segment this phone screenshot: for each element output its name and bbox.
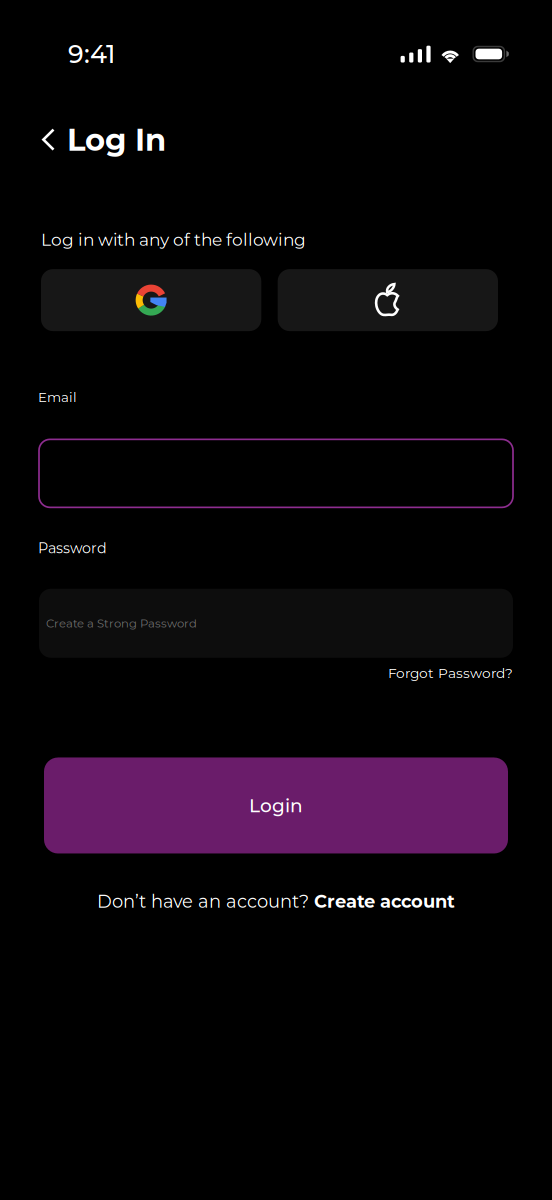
staticText: Log in with any of the following [41,229,306,250]
staticText: Email [38,389,77,405]
button[interactable]: Login [44,757,508,853]
button[interactable]: Forgot Password? [388,665,513,681]
staticText: Login [249,794,303,817]
staticText: 9:41 [68,39,115,69]
staticText: Create account [314,890,455,912]
staticText: Forgot Password? [388,665,513,681]
staticText: Password [38,539,107,557]
button[interactable]: Don’t have an account? [97,890,455,912]
button[interactable]: Continue with Apple [278,269,498,331]
staticText: Create a Strong Password [46,616,197,630]
button[interactable]: Continue with Google [41,269,261,331]
button[interactable]: Back [42,121,166,158]
staticText: Don’t have an account? [97,890,314,912]
staticText: Log In [67,121,166,158]
